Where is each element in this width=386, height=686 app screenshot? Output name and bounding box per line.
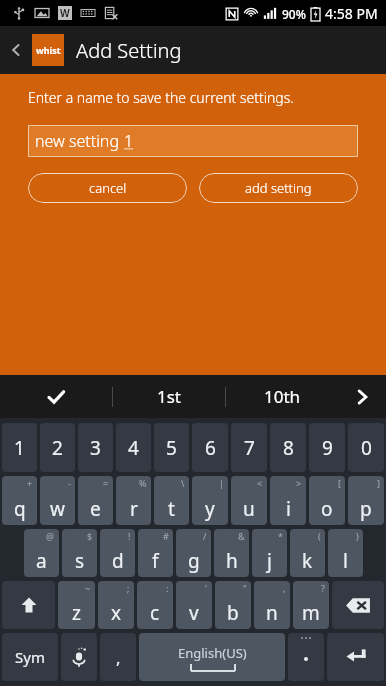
button[interactable]: ? (293, 581, 329, 629)
button[interactable]: 1st (113, 375, 225, 418)
staticText: % (139, 477, 147, 489)
staticText: d (112, 548, 124, 574)
staticText: ? (321, 582, 325, 594)
button[interactable]: * (252, 529, 287, 577)
button[interactable]: : (137, 581, 173, 629)
staticText: Enter a name to save the current setting… (28, 88, 294, 107)
staticText: + (27, 477, 33, 489)
staticText: g (188, 548, 200, 574)
staticText: " (243, 582, 247, 594)
button[interactable]: + (2, 476, 37, 525)
button[interactable]: 4 (116, 423, 151, 472)
button[interactable]: Period (288, 633, 324, 681)
staticText: 90% (282, 6, 306, 22)
staticText: p (360, 496, 372, 522)
button[interactable]: ( (290, 529, 325, 577)
staticText: 6 (205, 435, 216, 461)
button[interactable]: 10th (226, 375, 338, 418)
button[interactable]: whist (32, 34, 64, 66)
staticText: whist (36, 44, 61, 56)
button[interactable]: 2 (40, 423, 75, 472)
staticText: n (266, 600, 278, 626)
button[interactable]: , (254, 581, 290, 629)
button[interactable]: cancel (28, 173, 187, 203)
button[interactable]: " (215, 581, 251, 629)
button[interactable]: & (214, 529, 249, 577)
button[interactable]: Back (0, 26, 32, 74)
button[interactable]: < (231, 476, 267, 525)
button[interactable]: 1 (2, 423, 37, 472)
button[interactable]: 3 (78, 423, 113, 472)
staticText: \ (181, 477, 185, 489)
button[interactable]: add setting (199, 173, 358, 203)
button[interactable]: [ (309, 476, 345, 525)
button[interactable]: / (176, 529, 211, 577)
button[interactable]: Backspace (332, 581, 384, 629)
staticText: 7 (244, 435, 255, 461)
button[interactable]: 9 (309, 423, 345, 472)
staticText: , (116, 646, 121, 669)
staticText: ] (377, 477, 380, 489)
staticText: v (189, 600, 199, 626)
button[interactable]: # (138, 529, 173, 577)
staticText: | (219, 477, 224, 489)
button[interactable]: | (192, 476, 228, 525)
button[interactable]: - (40, 476, 75, 525)
button[interactable]: % (116, 476, 151, 525)
staticText: f (152, 548, 159, 574)
staticText: 4 (128, 435, 139, 461)
button[interactable]: ~ (58, 581, 95, 629)
button[interactable]: = (78, 476, 113, 525)
staticText: 2 (52, 435, 63, 461)
staticText: 5 (166, 435, 177, 461)
button[interactable]: ] (348, 476, 384, 525)
button[interactable]: Space (139, 633, 285, 681)
button[interactable]: ; (98, 581, 134, 629)
staticText: = (103, 477, 109, 489)
staticText: l (343, 548, 348, 574)
button[interactable]: $ (62, 529, 97, 577)
staticText: 0 (361, 435, 372, 461)
button[interactable]: Enter (327, 633, 384, 681)
staticText: q (14, 496, 26, 522)
button[interactable]: ) (328, 529, 363, 577)
staticText: > (296, 477, 302, 489)
staticText: cancel (89, 179, 127, 197)
button[interactable]: \ (154, 476, 189, 525)
button[interactable]: new setting (28, 125, 358, 157)
staticText: & (238, 530, 245, 542)
staticText: b (227, 600, 239, 626)
staticText: / (203, 530, 207, 542)
staticText: * (278, 530, 283, 542)
staticText: ; (127, 582, 130, 594)
button[interactable]: > (270, 476, 306, 525)
button[interactable]: 5 (154, 423, 189, 472)
staticText: Add Setting (76, 37, 182, 64)
staticText: j (267, 548, 272, 574)
staticText: 1 (14, 435, 25, 461)
staticText: add setting (245, 179, 312, 197)
button[interactable]: More suggestions (338, 375, 386, 418)
staticText: : (166, 582, 169, 594)
staticText: o (321, 496, 333, 522)
button[interactable]: 7 (231, 423, 267, 472)
button[interactable]: Voice input (61, 633, 97, 681)
staticText: u (243, 496, 255, 522)
staticText: s (75, 548, 85, 574)
staticText: # (163, 530, 169, 542)
staticText: r (130, 496, 138, 522)
button[interactable]: @ (24, 529, 59, 577)
button[interactable]: 0 (348, 423, 384, 472)
staticText: i (286, 496, 291, 522)
button[interactable]: Sym (2, 633, 58, 681)
button[interactable]: , (100, 633, 136, 681)
staticText: Sym (15, 647, 45, 667)
button[interactable]: ' (176, 581, 212, 629)
staticText: ~ (85, 582, 91, 594)
button[interactable]: ! (100, 529, 135, 577)
button[interactable]: 6 (192, 423, 228, 472)
button[interactable]: 8 (270, 423, 306, 472)
button[interactable]: Shift (2, 581, 55, 629)
staticText: 3 (90, 435, 101, 461)
button[interactable]: Accept suggestion (0, 375, 112, 418)
